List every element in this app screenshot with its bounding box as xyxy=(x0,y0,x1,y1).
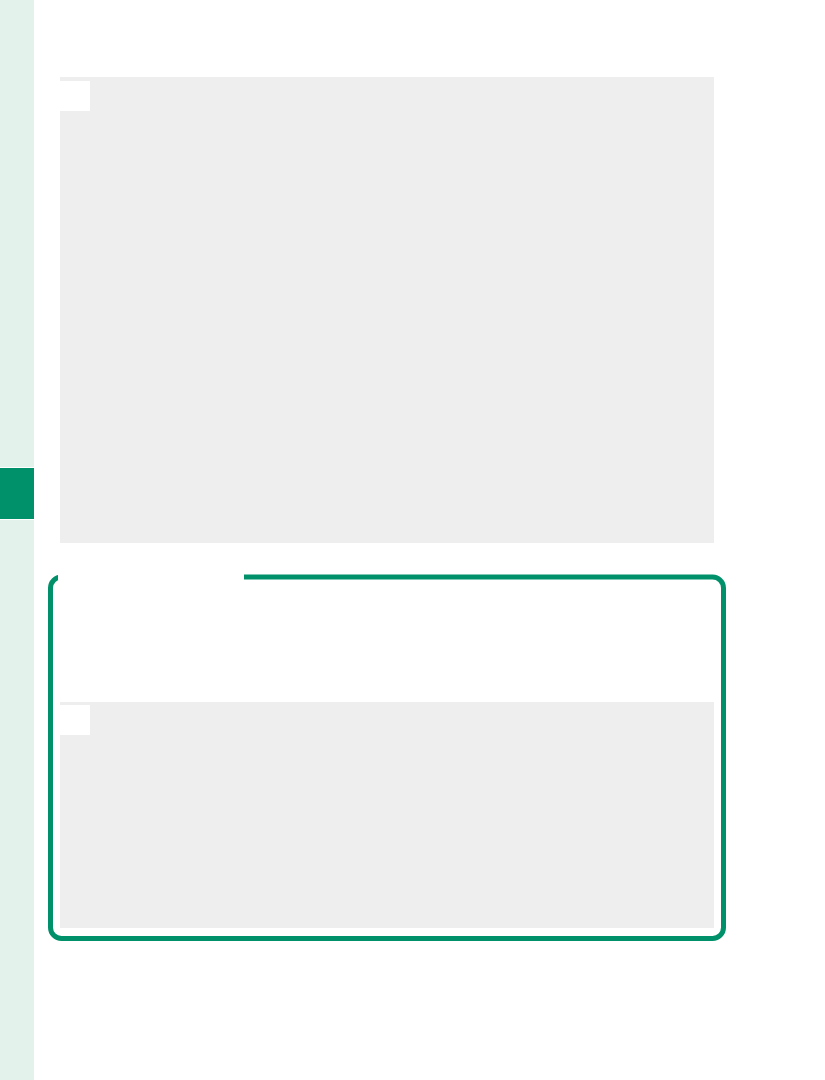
button[interactable]: Scroll bar xyxy=(0,0,34,1080)
button[interactable]: Outlined card xyxy=(48,574,726,941)
